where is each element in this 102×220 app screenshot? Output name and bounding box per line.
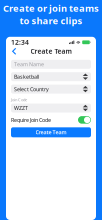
staticText: Join Code xyxy=(11,97,27,102)
staticText: WZZT xyxy=(14,104,28,112)
staticText: Create Team xyxy=(30,47,71,56)
button[interactable]: Create Team xyxy=(11,127,91,137)
staticText: Create Team xyxy=(35,129,66,136)
staticText: Basketball xyxy=(14,73,39,80)
button[interactable]: Team Name xyxy=(11,60,91,69)
button[interactable]: Require Join Code xyxy=(11,116,91,124)
staticText: 12:34 xyxy=(11,38,29,47)
staticText: to share clips xyxy=(19,14,82,27)
button[interactable]: Select Country xyxy=(11,85,91,94)
button[interactable]: WZZT xyxy=(11,103,91,112)
staticText: Team Name xyxy=(14,61,44,68)
button[interactable]: Back xyxy=(9,46,19,56)
button[interactable]: Basketball xyxy=(11,72,91,81)
staticText: Require Join Code xyxy=(11,116,51,123)
staticText: Create or join teams xyxy=(3,2,99,14)
staticText: Select Country xyxy=(14,85,49,93)
